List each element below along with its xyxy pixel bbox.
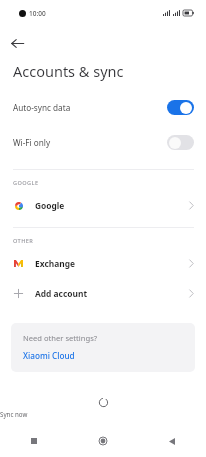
button[interactable]: Google (0, 192, 206, 219)
button[interactable]: Wi-Fi only (0, 128, 206, 157)
staticText: Auto-sync data (13, 102, 167, 113)
button[interactable] (167, 135, 194, 150)
button[interactable]: Exchange (0, 250, 206, 277)
staticText: Sync now (0, 410, 206, 418)
button[interactable]: Back (137, 429, 206, 453)
button[interactable]: Recents (0, 429, 68, 453)
button[interactable]: Add account (0, 280, 206, 307)
button[interactable]: Home (68, 429, 137, 453)
staticText: Need other settings? (23, 333, 98, 343)
button[interactable]: Sync now (0, 392, 206, 423)
staticText: Google (35, 200, 189, 211)
button[interactable] (167, 100, 194, 115)
staticText: Wi-Fi only (13, 137, 167, 148)
staticText: Xiaomi Cloud (23, 350, 75, 361)
button[interactable]: Auto-sync data (0, 93, 206, 122)
button[interactable]: Need other settings? (11, 323, 195, 372)
staticText: 10:00 (29, 9, 46, 18)
button[interactable]: Back (0, 26, 34, 60)
staticText: GOOGLE (13, 179, 39, 187)
staticText: OTHER (13, 237, 34, 245)
staticText: Exchange (35, 258, 189, 269)
staticText: Add account (35, 288, 189, 299)
staticText: Accounts & sync (13, 61, 124, 81)
